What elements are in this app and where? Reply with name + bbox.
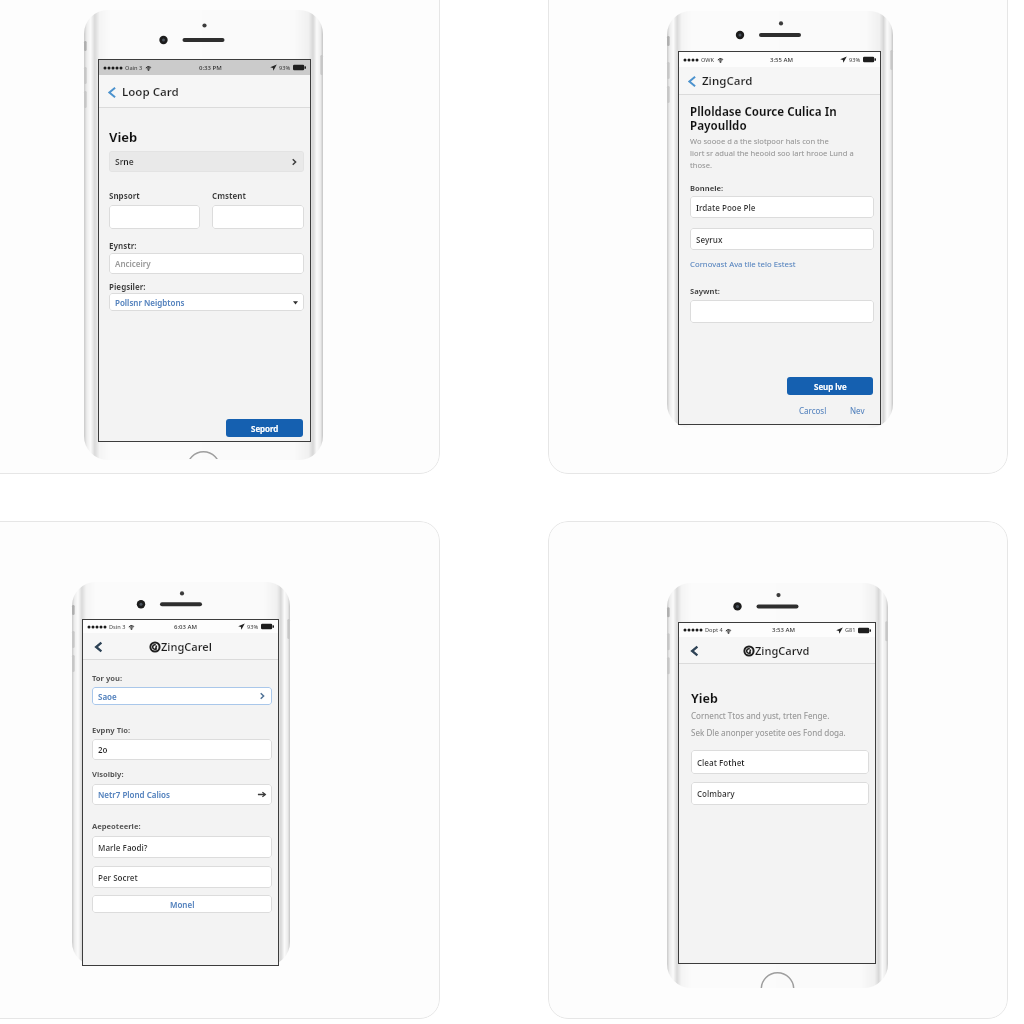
- staticText: G81: [845, 626, 856, 634]
- staticText: Nev: [850, 405, 865, 416]
- button[interactable]: Nev: [849, 404, 866, 417]
- staticText: Piegsiler:: [109, 281, 146, 292]
- staticText: Wo soooe d a the slotpoor hals con the l…: [690, 136, 854, 170]
- staticText: Saoe: [98, 691, 117, 702]
- button[interactable]: Seup lve: [787, 377, 873, 395]
- staticText: Seyrux: [696, 234, 723, 245]
- button[interactable]: Back: [103, 82, 121, 102]
- staticText: Sepord: [251, 423, 279, 434]
- button[interactable]: Seyrux: [690, 228, 874, 250]
- button[interactable]: [212, 205, 304, 229]
- staticText: Anciceiry: [115, 258, 151, 269]
- staticText: Vieb: [109, 128, 138, 146]
- staticText: Evpny Tio:: [92, 725, 131, 735]
- staticText: 93%: [849, 56, 861, 64]
- button[interactable]: Anciceiry: [109, 253, 304, 274]
- staticText: Oain 3: [125, 64, 143, 72]
- staticText: Plloldase Cource Culica In Payoulldo: [690, 104, 837, 134]
- staticText: Cmstent: [212, 190, 246, 201]
- staticText: Colmbary: [697, 788, 735, 799]
- staticText: 93%: [247, 623, 259, 631]
- button[interactable]: Carcosl: [798, 404, 828, 417]
- staticText: 6:03 AM: [174, 623, 198, 631]
- staticText: Snpsort: [109, 190, 140, 201]
- staticText: Visolbly:: [92, 769, 124, 779]
- button[interactable]: Oain 3: [0, 0, 440, 474]
- button[interactable]: Pollsnr Neigbtons: [109, 293, 304, 311]
- staticText: Sek Dle anonper yosetite oes Fond doga.: [691, 727, 846, 738]
- button[interactable]: Colmbary: [691, 782, 869, 805]
- staticText: Per Socret: [98, 872, 138, 883]
- button[interactable]: Dsin 3: [0, 521, 440, 1019]
- staticText: Tor you:: [92, 673, 123, 683]
- staticText: 3:55 AM: [770, 56, 794, 64]
- staticText: Cornenct Ttos and yust, trten Fenge.: [691, 710, 830, 721]
- staticText: OWK: [701, 56, 715, 64]
- button[interactable]: 2o: [92, 739, 272, 760]
- button[interactable]: [690, 300, 874, 323]
- button[interactable]: Netr7 Plond Calios: [92, 784, 272, 805]
- button[interactable]: [109, 205, 200, 229]
- staticText: Carcosl: [799, 405, 827, 416]
- staticText: Dsin 3: [109, 623, 126, 631]
- staticText: Pollsnr Neigbtons: [115, 297, 185, 308]
- staticText: Bonnele:: [690, 183, 724, 193]
- button[interactable]: Back: [90, 637, 108, 657]
- button[interactable]: Monel: [92, 895, 272, 913]
- staticText: 3:53 AM: [772, 626, 796, 634]
- staticText: Irdate Pooe Ple: [696, 202, 756, 213]
- button[interactable]: Irdate Pooe Ple: [690, 196, 874, 218]
- button[interactable]: Per Socret: [92, 866, 272, 888]
- staticText: Cornovast Ava tlle telo Estest: [690, 259, 796, 270]
- button[interactable]: Back: [686, 641, 704, 661]
- button[interactable]: Dopt 4: [548, 521, 1008, 1019]
- button[interactable]: Sepord: [226, 419, 303, 437]
- button[interactable]: Marle Faodi?: [92, 836, 272, 858]
- staticText: Saywnt:: [690, 286, 720, 296]
- button[interactable]: OWK: [548, 0, 1008, 474]
- staticText: Cleat Fothet: [697, 757, 745, 768]
- staticText: Netr7 Plond Calios: [98, 789, 170, 800]
- staticText: Monel: [170, 899, 195, 910]
- staticText: ZingCard: [702, 73, 753, 89]
- button[interactable]: Srne: [109, 151, 304, 172]
- button[interactable]: Saoe: [92, 687, 272, 705]
- staticText: Aepeoteerle:: [92, 821, 141, 831]
- staticText: Seup lve: [814, 381, 847, 392]
- staticText: Marle Faodi?: [98, 842, 148, 853]
- staticText: ZingCarvd: [755, 643, 810, 658]
- staticText: 0:33 PM: [199, 64, 222, 72]
- staticText: Yieb: [691, 690, 718, 707]
- staticText: ZingCarel: [161, 639, 212, 654]
- staticText: Loop Card: [122, 84, 179, 100]
- staticText: Srne: [115, 156, 134, 168]
- button[interactable]: Cleat Fothet: [691, 750, 869, 774]
- staticText: Dopt 4: [705, 626, 723, 634]
- staticText: 2o: [98, 744, 108, 755]
- button[interactable]: Back: [683, 71, 701, 91]
- staticText: Eynstr:: [109, 240, 137, 251]
- staticText: 93%: [279, 64, 291, 72]
